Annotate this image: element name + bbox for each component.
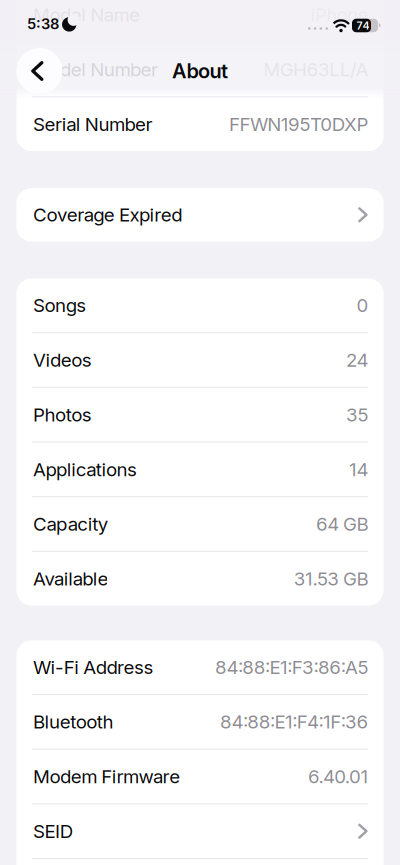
staticText: Bluetooth [33,711,113,733]
staticText: 35 [346,404,368,426]
button[interactable]: Photos [16,388,383,441]
button[interactable]: Modem Firmware [16,750,383,803]
staticText: 64 GB [316,513,368,535]
button[interactable]: Coverage Expired [16,188,383,242]
button[interactable]: Model Number [16,43,383,96]
staticText: 24 [346,349,368,371]
staticText: Modem Firmware [33,765,180,787]
staticText: Coverage Expired [33,204,182,226]
button[interactable]: Back [16,48,62,94]
staticText: Model Name [33,4,140,26]
staticText: 0 [356,294,368,316]
button[interactable]: Bluetooth [16,695,383,749]
staticText: 6.40.01 [308,765,368,787]
button[interactable]: Applications [16,442,383,496]
staticText: Model Number [33,58,158,80]
staticText: FFWN195T0DXP [229,113,368,135]
staticText: 84:88:E1:F3:86:A5 [215,656,368,678]
staticText: Songs [33,294,86,316]
button[interactable]: Serial Number [16,97,383,151]
staticText: 31.53 GB [294,568,368,590]
staticText: Capacity [33,513,108,535]
staticText: About [172,59,228,83]
button[interactable]: SEID [16,804,383,858]
button[interactable]: Capacity [16,497,383,551]
staticText: Wi-Fi Address [33,656,154,678]
button[interactable]: Wi-Fi Address [16,640,383,694]
staticText: Available [33,568,108,590]
staticText: 14 [349,458,368,480]
staticText: Photos [33,404,92,426]
staticText: 84:88:E1:F4:1F:36 [220,711,368,733]
staticText: MGH63LL/A [263,58,368,80]
staticText: Applications [33,458,137,480]
button[interactable]: Videos [16,333,383,387]
button[interactable]: Songs [16,278,383,332]
button[interactable]: Available [16,552,383,605]
staticText: Videos [33,349,92,371]
button[interactable]: Model Name [16,0,383,42]
staticText: iPhone [310,4,368,26]
staticText: Serial Number [33,113,153,135]
staticText: SEID [33,820,73,842]
staticText: 5:38 [27,15,59,33]
staticText: 74 [356,19,369,32]
